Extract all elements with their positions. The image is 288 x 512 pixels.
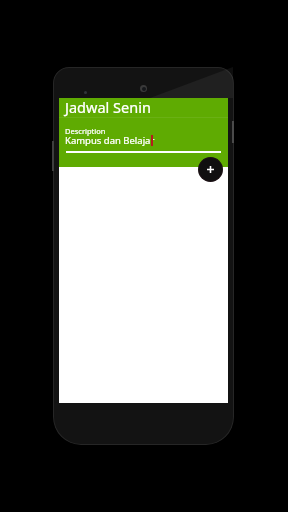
- button[interactable]: [198, 157, 223, 182]
- staticText: Jadwal Senin: [65, 97, 151, 117]
- staticText: Description: [65, 126, 106, 136]
- button[interactable]: Kampus dan Belajar: [65, 134, 155, 147]
